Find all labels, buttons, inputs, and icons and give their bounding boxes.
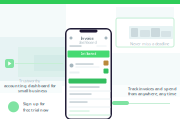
staticText: accounting dashboard for — [4, 83, 56, 88]
staticText: Sign up for — [23, 101, 45, 106]
staticText: Invoice — [80, 35, 93, 41]
staticText: small business — [18, 88, 47, 93]
staticText: Track invoices and spend — [128, 86, 177, 91]
button[interactable]: Sign up for — [8, 101, 48, 113]
button[interactable]: Get Started — [67, 50, 109, 57]
staticText: Get Started — [80, 52, 96, 56]
button[interactable]: Timeline — [112, 101, 129, 105]
staticText: free trial now — [23, 107, 48, 113]
staticText: dashboard — [78, 39, 96, 45]
button[interactable]: Play overview — [5, 59, 14, 68]
staticText: from anywhere, any time — [128, 91, 176, 96]
staticText: Trustworthy — [19, 78, 40, 83]
staticText: Never miss a deadline — [130, 41, 169, 46]
